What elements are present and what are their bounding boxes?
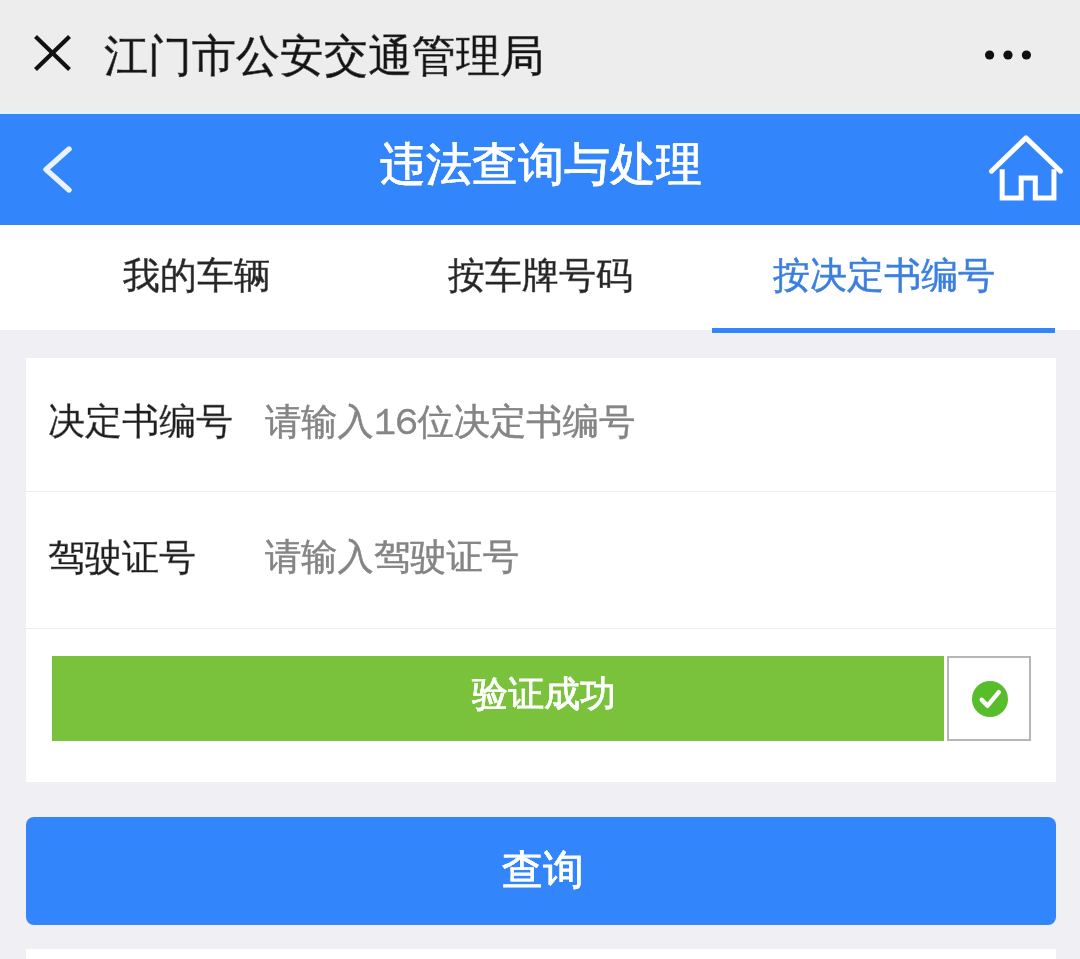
- button[interactable]: Verified: [947, 656, 1031, 741]
- staticText: 江门市公安交通管理局: [104, 29, 544, 84]
- staticText: 违法查询与处理: [380, 136, 702, 194]
- staticText: 江门市公安交通管理局: [104, 29, 544, 84]
- button[interactable]: 按车牌号码: [369, 225, 712, 333]
- button[interactable]: 驾驶证号: [26, 492, 1056, 628]
- staticText: 驾驶证号: [48, 534, 196, 581]
- staticText: 违法查询与处理: [380, 136, 702, 194]
- staticText: 请输入16位决定书编号: [265, 399, 636, 445]
- staticText: 按车牌号码: [448, 252, 633, 299]
- button[interactable]: Back: [0, 114, 111, 225]
- staticText: 驾驶证号: [48, 534, 196, 581]
- staticText: 按车牌号码: [448, 252, 633, 299]
- button[interactable]: 验证成功: [52, 656, 944, 741]
- staticText: 查询: [502, 845, 584, 897]
- staticText: 我的车辆: [123, 252, 271, 299]
- staticText: 请输入16位决定书编号: [265, 399, 636, 445]
- staticText: 请输入驾驶证号: [265, 534, 520, 580]
- staticText: 验证成功: [472, 671, 616, 716]
- staticText: 按决定书编号: [773, 252, 995, 299]
- button[interactable]: Close: [0, 0, 106, 111]
- button[interactable]: 决定书编号: [26, 358, 1056, 491]
- staticText: 我的车辆: [123, 252, 271, 299]
- staticText: 查询: [502, 845, 584, 897]
- button[interactable]: More options: [940, 0, 1080, 111]
- staticText: 决定书编号: [48, 398, 233, 445]
- staticText: 请输入驾驶证号: [265, 534, 520, 580]
- staticText: 验证成功: [472, 671, 616, 716]
- button[interactable]: 查询: [26, 817, 1056, 925]
- button[interactable]: Home: [985, 114, 1080, 225]
- staticText: 决定书编号: [48, 398, 233, 445]
- staticText: 按决定书编号: [773, 252, 995, 299]
- button[interactable]: 按决定书编号: [712, 225, 1055, 333]
- button[interactable]: 我的车辆: [25, 225, 369, 333]
